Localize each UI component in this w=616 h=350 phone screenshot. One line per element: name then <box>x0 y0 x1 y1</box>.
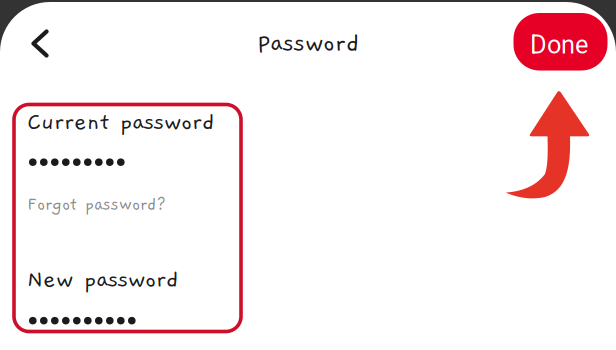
button[interactable]: Forgot password? <box>27 195 167 214</box>
button[interactable]: Back <box>18 20 62 64</box>
button[interactable]: Done <box>513 13 607 70</box>
staticText: Forgot password? <box>27 195 167 214</box>
staticText: Current password <box>27 109 215 135</box>
staticText: Done <box>530 30 588 60</box>
staticText: Password <box>257 29 359 57</box>
staticText: New password <box>27 266 179 293</box>
